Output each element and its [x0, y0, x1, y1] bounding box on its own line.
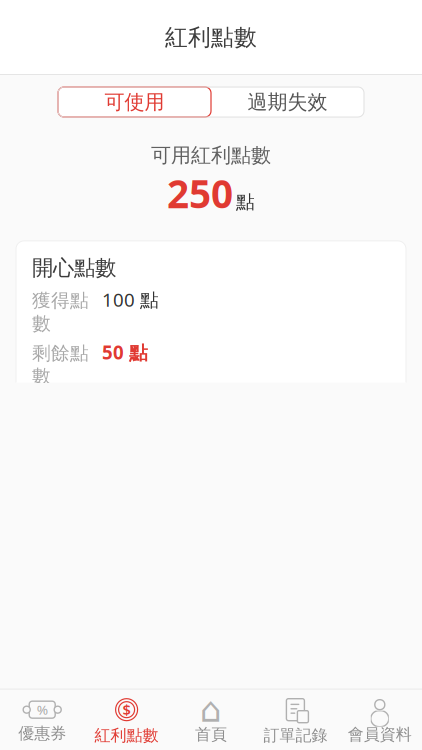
button[interactable]: 點數大放送 [16, 519, 406, 750]
staticText: 可使用 [104, 90, 164, 114]
button[interactable]: 訂單記錄 [253, 690, 338, 750]
staticText: 紅利點數 [165, 24, 257, 51]
staticText: % [37, 701, 48, 718]
staticText: 過期失效 [247, 90, 327, 114]
staticText: 獲得點數 [32, 289, 89, 335]
staticText: 開心點數 [32, 255, 116, 281]
staticText: 會員資料 [348, 725, 412, 744]
button[interactable]: 開心點數 [16, 241, 406, 507]
staticText: 首頁 [195, 725, 227, 744]
staticText: 250 [167, 168, 233, 219]
button[interactable]: 可使用 [58, 87, 211, 117]
staticText: 點 [236, 191, 255, 213]
button[interactable]: ⌂ [169, 691, 253, 750]
staticText: 可用紅利點數 [151, 143, 271, 168]
button[interactable]: 會員資料 [338, 691, 422, 750]
button[interactable]: 過期失效 [211, 87, 364, 117]
staticText: 訂單記錄 [263, 726, 327, 745]
staticText: ⌂ [200, 690, 222, 729]
button[interactable]: $ [84, 690, 169, 750]
staticText: 紅利點數 [95, 726, 159, 745]
staticText: 50 點 [102, 340, 148, 365]
button[interactable]: % [0, 692, 84, 749]
staticText: 優惠券 [18, 724, 66, 743]
staticText: 使用期限 [32, 724, 89, 750]
staticText: $ [123, 700, 131, 719]
staticText: 起始時間 [32, 673, 89, 719]
staticText: 剩餘點數 [32, 342, 89, 388]
staticText: 100 點 [102, 287, 159, 312]
staticText: 無期限 [102, 724, 159, 747]
